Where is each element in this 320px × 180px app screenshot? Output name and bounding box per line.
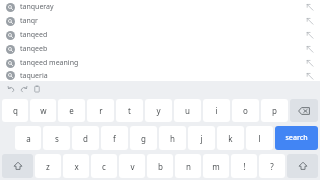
button[interactable]: b bbox=[147, 154, 173, 178]
button[interactable]: Emoji bbox=[287, 154, 318, 178]
staticText: w bbox=[40, 105, 47, 116]
staticText: tanqeeb bbox=[20, 44, 48, 54]
staticText: d bbox=[83, 133, 88, 144]
button[interactable]: w bbox=[30, 99, 56, 122]
button[interactable]: Undo bbox=[4, 82, 17, 95]
button[interactable]: search bbox=[275, 126, 318, 150]
button[interactable]: l bbox=[246, 126, 273, 150]
staticText: taqueria bbox=[20, 71, 48, 81]
staticText: s bbox=[55, 133, 59, 144]
staticText: y bbox=[156, 105, 161, 116]
button[interactable]: h bbox=[159, 126, 186, 150]
button[interactable]: q bbox=[2, 99, 28, 122]
staticText: b bbox=[158, 161, 163, 172]
button[interactable]: e bbox=[58, 99, 85, 122]
button[interactable]: g bbox=[130, 126, 157, 150]
button[interactable]: k bbox=[217, 126, 244, 150]
button[interactable]: d bbox=[72, 126, 99, 150]
staticText: ? bbox=[270, 161, 274, 172]
staticText: v bbox=[130, 161, 135, 172]
button[interactable]: tanqeed meaning bbox=[0, 56, 320, 70]
staticText: z bbox=[46, 161, 50, 172]
staticText: l bbox=[258, 133, 261, 144]
button[interactable]: taqueria bbox=[0, 70, 320, 81]
staticText: q bbox=[13, 105, 18, 116]
button[interactable]: x bbox=[63, 154, 89, 178]
staticText: tanqeed bbox=[20, 30, 48, 40]
button[interactable]: Shift bbox=[2, 154, 33, 178]
staticText: f bbox=[113, 133, 116, 144]
button[interactable]: tanqr bbox=[0, 14, 320, 28]
button[interactable]: Clipboard bbox=[30, 82, 43, 95]
staticText: u bbox=[185, 105, 190, 116]
button[interactable]: z bbox=[35, 154, 61, 178]
button[interactable]: y bbox=[145, 99, 172, 122]
staticText: r bbox=[99, 105, 103, 116]
staticText: i bbox=[215, 105, 218, 116]
button[interactable]: ! bbox=[231, 154, 257, 178]
staticText: o bbox=[243, 105, 248, 116]
staticText: ! bbox=[243, 161, 246, 172]
staticText: m bbox=[212, 161, 220, 172]
button[interactable]: t bbox=[116, 99, 143, 122]
button[interactable]: u bbox=[174, 99, 201, 122]
button[interactable]: o bbox=[232, 99, 259, 122]
button[interactable]: c bbox=[91, 154, 117, 178]
button[interactable]: s bbox=[43, 126, 70, 150]
staticText: a bbox=[26, 133, 31, 144]
staticText: t bbox=[128, 105, 131, 116]
staticText: n bbox=[186, 161, 191, 172]
button[interactable]: m bbox=[203, 154, 229, 178]
staticText: k bbox=[228, 133, 233, 144]
staticText: g bbox=[141, 133, 146, 144]
button[interactable]: i bbox=[203, 99, 230, 122]
staticText: c bbox=[102, 161, 106, 172]
staticText: e bbox=[69, 105, 74, 116]
button[interactable]: tanqueray bbox=[0, 0, 320, 14]
button[interactable]: tanqeeb bbox=[0, 42, 320, 56]
staticText: search bbox=[285, 133, 308, 143]
button[interactable]: j bbox=[188, 126, 215, 150]
button[interactable]: r bbox=[87, 99, 114, 122]
button[interactable]: Backspace bbox=[290, 99, 318, 122]
staticText: tanqeed meaning bbox=[20, 58, 79, 68]
staticText: p bbox=[272, 105, 277, 116]
button[interactable]: ? bbox=[259, 154, 285, 178]
staticText: h bbox=[170, 133, 175, 144]
staticText: tanqueray bbox=[20, 2, 54, 12]
button[interactable]: p bbox=[261, 99, 288, 122]
staticText: j bbox=[200, 133, 203, 144]
button[interactable]: n bbox=[175, 154, 201, 178]
button[interactable]: f bbox=[101, 126, 128, 150]
button[interactable]: v bbox=[119, 154, 145, 178]
button[interactable]: a bbox=[15, 126, 41, 150]
button[interactable]: Redo bbox=[17, 82, 30, 95]
staticText: tanqr bbox=[20, 16, 38, 26]
button[interactable]: tanqeed bbox=[0, 28, 320, 42]
staticText: x bbox=[74, 161, 79, 172]
